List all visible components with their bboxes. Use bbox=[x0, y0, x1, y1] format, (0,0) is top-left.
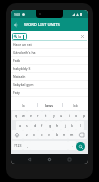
staticText: a bbox=[19, 123, 22, 128]
staticText: Faty bbox=[13, 90, 20, 95]
staticText: laws bbox=[45, 103, 54, 108]
button[interactable]: s bbox=[23, 121, 31, 130]
staticText: Hace un rat bbox=[13, 42, 32, 47]
button[interactable]: hakybldy S bbox=[11, 65, 88, 73]
staticText: c bbox=[41, 132, 43, 137]
staticText: ?123 bbox=[14, 143, 22, 148]
staticText: p bbox=[83, 113, 86, 118]
staticText: j bbox=[65, 123, 66, 128]
button[interactable]: a bbox=[16, 121, 24, 130]
staticText: g bbox=[49, 123, 52, 128]
button[interactable]: r bbox=[34, 111, 42, 120]
button[interactable]: Gándoríh's ha bbox=[11, 49, 88, 57]
button[interactable]: k bbox=[68, 121, 76, 130]
button[interactable] bbox=[75, 130, 87, 139]
staticText: q bbox=[15, 113, 18, 118]
staticText: lab bbox=[73, 103, 78, 108]
button[interactable]: o bbox=[72, 111, 80, 120]
button[interactable]: g bbox=[46, 121, 54, 130]
staticText: i bbox=[69, 113, 70, 118]
button[interactable]: t bbox=[42, 111, 50, 120]
button[interactable]: p bbox=[80, 111, 88, 120]
button[interactable]: z bbox=[23, 130, 31, 139]
button[interactable]: la bbox=[12, 33, 27, 40]
staticText: la bbox=[22, 103, 25, 108]
button[interactable]: v bbox=[45, 130, 53, 139]
button[interactable]: . bbox=[68, 141, 76, 150]
staticText: t bbox=[45, 113, 47, 118]
staticText: Natsaln bbox=[13, 74, 26, 79]
button[interactable]: w bbox=[19, 111, 27, 120]
staticText: y bbox=[53, 113, 55, 118]
staticText: m bbox=[70, 132, 74, 137]
button[interactable]: Natsaln bbox=[11, 73, 88, 81]
staticText: k bbox=[71, 123, 73, 128]
button[interactable] bbox=[28, 158, 31, 161]
staticText: Fatb bbox=[13, 58, 21, 63]
staticText: WORD LIST UNITS bbox=[24, 22, 60, 28]
button[interactable] bbox=[14, 23, 18, 27]
button[interactable]: x bbox=[30, 130, 38, 139]
button[interactable]: e bbox=[27, 111, 35, 120]
button[interactable]: q bbox=[12, 111, 20, 120]
button[interactable]: Fatb bbox=[11, 57, 88, 65]
staticText: h bbox=[56, 123, 59, 128]
staticText: n bbox=[63, 132, 66, 137]
button[interactable] bbox=[12, 130, 23, 139]
button[interactable] bbox=[76, 142, 85, 151]
staticText: o bbox=[75, 113, 78, 118]
staticText: s bbox=[26, 123, 28, 128]
button[interactable]: ?123 bbox=[12, 141, 23, 150]
button[interactable]: f bbox=[38, 121, 46, 130]
staticText: w bbox=[22, 113, 25, 118]
staticText: x bbox=[33, 132, 35, 137]
staticText: e bbox=[30, 113, 33, 118]
button[interactable]: u bbox=[57, 111, 65, 120]
staticText: b bbox=[56, 132, 59, 137]
staticText: . bbox=[72, 143, 73, 148]
button[interactable]: Faty bbox=[11, 89, 88, 97]
button[interactable] bbox=[48, 158, 51, 161]
staticText: z bbox=[26, 132, 28, 137]
staticText: , bbox=[27, 143, 28, 148]
staticText: la bbox=[18, 34, 22, 39]
button[interactable]: m bbox=[68, 130, 76, 139]
button[interactable]: d bbox=[31, 121, 39, 130]
staticText: 9:58 bbox=[14, 13, 20, 17]
staticText: v bbox=[48, 132, 50, 137]
staticText: Sabykal gym bbox=[13, 82, 34, 87]
staticText: u bbox=[60, 113, 63, 118]
button[interactable]: i bbox=[65, 111, 73, 120]
staticText: r bbox=[37, 113, 39, 118]
staticText: Gándoríh's ha bbox=[13, 50, 36, 55]
button[interactable]: b bbox=[53, 130, 61, 139]
button[interactable]: Sabykal gym bbox=[11, 81, 88, 89]
button[interactable]: n bbox=[60, 130, 68, 139]
staticText: l bbox=[80, 123, 81, 128]
staticText: f bbox=[41, 123, 43, 128]
button[interactable]: Hace un rat bbox=[11, 41, 88, 49]
button[interactable]: y bbox=[50, 111, 58, 120]
button[interactable]: j bbox=[61, 121, 69, 130]
button[interactable]: c bbox=[38, 130, 46, 139]
button[interactable]: , bbox=[23, 141, 31, 150]
staticText: d bbox=[34, 123, 37, 128]
staticText: hakybldy S bbox=[13, 66, 31, 71]
button[interactable]: l bbox=[76, 121, 84, 130]
button[interactable] bbox=[81, 35, 84, 38]
button[interactable] bbox=[68, 158, 71, 161]
button[interactable]: h bbox=[53, 121, 61, 130]
